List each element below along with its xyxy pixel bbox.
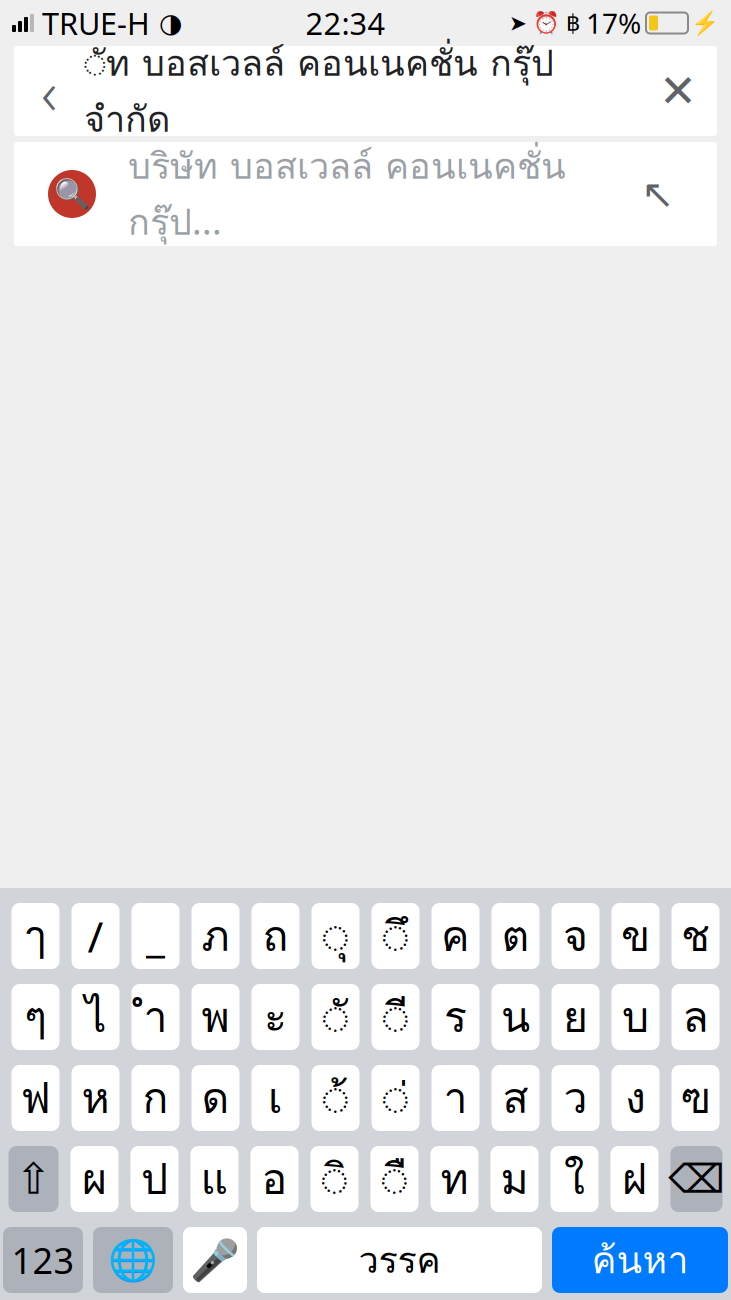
staticText: ต — [501, 903, 529, 969]
button[interactable]: ้ — [311, 1065, 359, 1131]
button[interactable]: ด — [191, 1065, 239, 1131]
staticText: ห — [81, 1065, 109, 1131]
button[interactable]: 🔍 — [14, 142, 717, 246]
button[interactable]: ร — [431, 984, 479, 1050]
button[interactable]: Numbers — [3, 1227, 83, 1293]
button[interactable]: ว — [551, 1065, 599, 1131]
button[interactable]: แ — [190, 1146, 238, 1212]
staticText: ส — [502, 1065, 528, 1131]
staticText: ล — [682, 984, 708, 1050]
staticText: ➤ — [509, 11, 527, 35]
button[interactable]: / — [71, 903, 119, 969]
staticText: ัท บอสเวลล์ คอนเนคชั่น กรุ๊ป จำกัด — [84, 35, 554, 147]
staticText: พ — [201, 984, 229, 1050]
button[interactable]: เ — [251, 1065, 299, 1131]
staticText: 🌐 — [108, 1237, 158, 1283]
staticText: ื — [381, 1146, 407, 1212]
button[interactable]: ฟ — [11, 1065, 59, 1131]
button[interactable]: ช — [671, 903, 719, 969]
staticText: 123 — [11, 1236, 74, 1284]
button[interactable]: บ — [611, 984, 659, 1050]
button[interactable]: วรรค — [257, 1227, 542, 1293]
button[interactable]: Back — [14, 46, 84, 136]
button[interactable]: ย — [551, 984, 599, 1050]
staticText: ำ — [143, 984, 167, 1050]
staticText: _ — [146, 908, 165, 964]
staticText: / — [87, 908, 103, 964]
button[interactable]: _ — [131, 903, 179, 969]
button[interactable]: ี — [371, 984, 419, 1050]
button[interactable]: า — [431, 1065, 479, 1131]
staticText: วรรค — [358, 1232, 440, 1288]
staticText: น — [501, 984, 530, 1050]
staticText: ี — [382, 984, 408, 1050]
staticText: ใ — [564, 1146, 585, 1212]
button[interactable]: ผ — [70, 1146, 118, 1212]
button[interactable]: อ — [250, 1146, 298, 1212]
button[interactable]: ข — [611, 903, 659, 969]
button[interactable]: จ — [551, 903, 599, 969]
staticText: ก — [142, 1065, 168, 1131]
button[interactable]: Shift — [8, 1146, 58, 1212]
button[interactable]: ฃ — [671, 1065, 719, 1131]
staticText: ฝ — [622, 1146, 647, 1212]
staticText: ไ — [85, 984, 106, 1050]
staticText: ป — [141, 1146, 168, 1212]
staticText: ถ — [262, 903, 288, 969]
button[interactable]: ึ — [371, 903, 419, 969]
staticText: อ — [261, 1146, 287, 1212]
button[interactable]: ฝ — [610, 1146, 658, 1212]
staticText: ด — [201, 1065, 229, 1131]
button[interactable]: ๆ — [11, 984, 59, 1050]
staticText: ม — [500, 1146, 528, 1212]
staticText: ค — [441, 903, 470, 969]
button[interactable]: ไ — [71, 984, 119, 1050]
staticText: ว — [563, 1065, 587, 1131]
button[interactable]: ง — [611, 1065, 659, 1131]
button[interactable]: พ — [191, 984, 239, 1050]
button[interactable]: ท — [430, 1146, 478, 1212]
staticText: ↖ — [641, 171, 675, 217]
staticText: ๆ — [24, 984, 47, 1050]
staticText: ⏰ — [533, 11, 560, 35]
button[interactable]: ิ — [310, 1146, 358, 1212]
button[interactable]: ม — [490, 1146, 538, 1212]
staticText: 🔍 — [53, 177, 90, 211]
button[interactable]: ต — [491, 903, 539, 969]
staticText: ึ — [382, 903, 408, 969]
staticText: า — [443, 1065, 467, 1131]
staticText: ั — [322, 984, 348, 1050]
button[interactable]: ค้นหา — [552, 1227, 728, 1293]
button[interactable]: ่ — [371, 1065, 419, 1131]
button[interactable]: ภ — [191, 903, 239, 969]
button[interactable]: ใ — [550, 1146, 598, 1212]
button[interactable]: ถ — [251, 903, 299, 969]
staticText: ✕ — [659, 65, 697, 117]
staticText: ค้นหา — [591, 1231, 688, 1289]
staticText: 22:34 — [305, 3, 385, 43]
button[interactable]: ส — [491, 1065, 539, 1131]
button[interactable]: ป — [130, 1146, 178, 1212]
staticText: ภ — [201, 903, 229, 969]
button[interactable]: ุ — [311, 903, 359, 969]
staticText: ง — [625, 1065, 646, 1131]
button[interactable]: Next keyboard — [93, 1227, 173, 1293]
button[interactable]: ค — [431, 903, 479, 969]
staticText: ฿ — [566, 10, 580, 36]
button[interactable]: น — [491, 984, 539, 1050]
button[interactable]: ะ — [251, 984, 299, 1050]
staticText: ⇧ — [15, 1155, 51, 1203]
button[interactable]: ล — [671, 984, 719, 1050]
button[interactable]: Dictation — [183, 1227, 247, 1293]
button[interactable]: Delete — [670, 1146, 722, 1212]
button[interactable]: ั — [311, 984, 359, 1050]
staticText: บ — [622, 984, 649, 1050]
button[interactable]: ๅ — [11, 903, 59, 969]
button[interactable]: ก — [131, 1065, 179, 1131]
button[interactable]: ื — [370, 1146, 418, 1212]
button[interactable]: ห — [71, 1065, 119, 1131]
button[interactable]: Clear — [639, 46, 717, 136]
button[interactable]: ำ — [131, 984, 179, 1050]
staticText: TRUE-H — [42, 3, 150, 43]
staticText: ⌫ — [668, 1156, 725, 1202]
